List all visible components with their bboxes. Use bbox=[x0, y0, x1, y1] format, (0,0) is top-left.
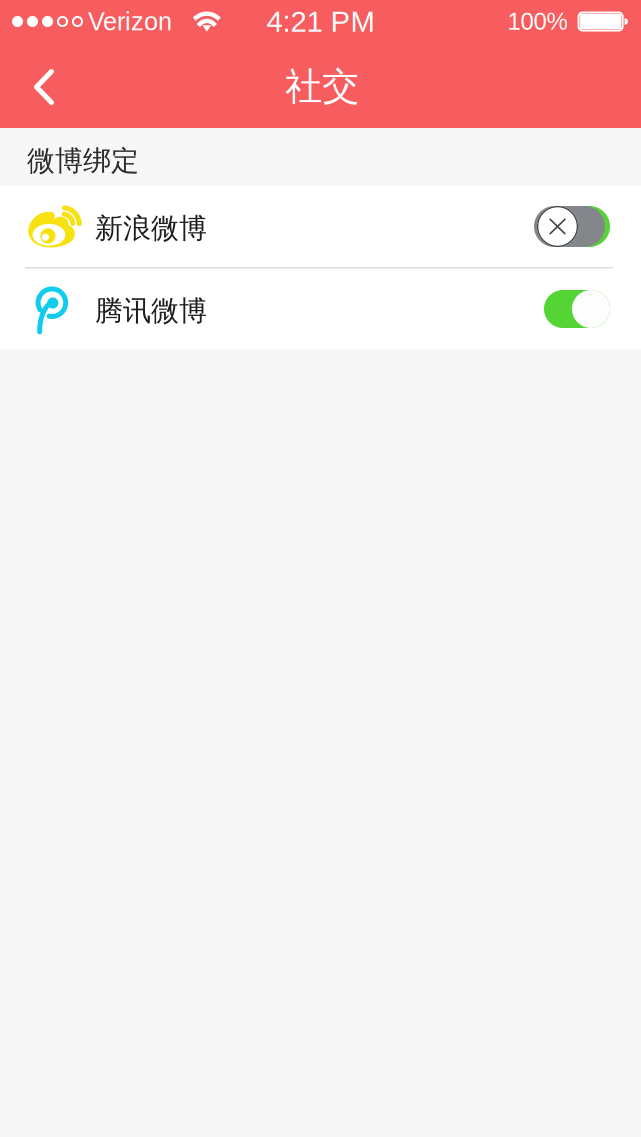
staticText: Verizon bbox=[88, 7, 172, 36]
button[interactable]: 新浪微博 bbox=[537, 206, 610, 247]
button[interactable]: 腾讯微博 bbox=[544, 290, 610, 328]
staticText: 新浪微博 bbox=[95, 211, 207, 246]
staticText: 100% bbox=[508, 8, 568, 35]
button[interactable]: Back bbox=[0, 47, 78, 121]
staticText: 腾讯微博 bbox=[95, 294, 207, 328]
staticText: 微博绑定 bbox=[27, 144, 139, 178]
staticText: 4:21 PM bbox=[266, 5, 374, 38]
staticText: 社交 bbox=[285, 64, 359, 109]
